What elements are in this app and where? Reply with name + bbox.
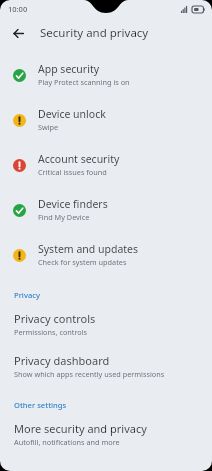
button[interactable]: System and updates — [0, 232, 212, 277]
staticText: Play Protect scanning is on — [38, 77, 130, 87]
staticText: Critical issues found — [38, 167, 107, 177]
button[interactable]: More security and privacy — [0, 413, 212, 455]
staticText: System and updates — [38, 242, 139, 256]
staticText: Security and privacy — [40, 25, 149, 41]
button[interactable]: Privacy dashboard — [0, 345, 212, 387]
staticText: 10:00 — [8, 4, 28, 14]
button[interactable]: Account security — [0, 142, 212, 187]
staticText: Show which apps recently used permission… — [14, 369, 165, 379]
staticText: More security and privacy — [14, 421, 147, 436]
staticText: Permissions, controls — [14, 327, 88, 337]
staticText: Privacy — [14, 290, 40, 300]
staticText: Autofill, notifications and more — [14, 437, 120, 447]
button[interactable]: Privacy controls — [0, 303, 212, 345]
button[interactable]: Device unlock — [0, 97, 212, 142]
staticText: Privacy dashboard — [14, 353, 110, 368]
staticText: Device finders — [38, 197, 108, 211]
staticText: Privacy controls — [14, 311, 96, 326]
staticText: App security — [38, 62, 100, 76]
staticText: Check for system updates — [38, 257, 127, 267]
staticText: Swipe — [38, 122, 59, 132]
staticText: Find My Device — [38, 212, 90, 222]
staticText: Device unlock — [38, 107, 106, 121]
staticText: Account security — [38, 152, 120, 166]
button[interactable]: Device finders — [0, 187, 212, 232]
staticText: Other settings — [14, 400, 67, 410]
button[interactable]: App security — [0, 52, 212, 97]
button[interactable]: Back — [5, 20, 31, 46]
